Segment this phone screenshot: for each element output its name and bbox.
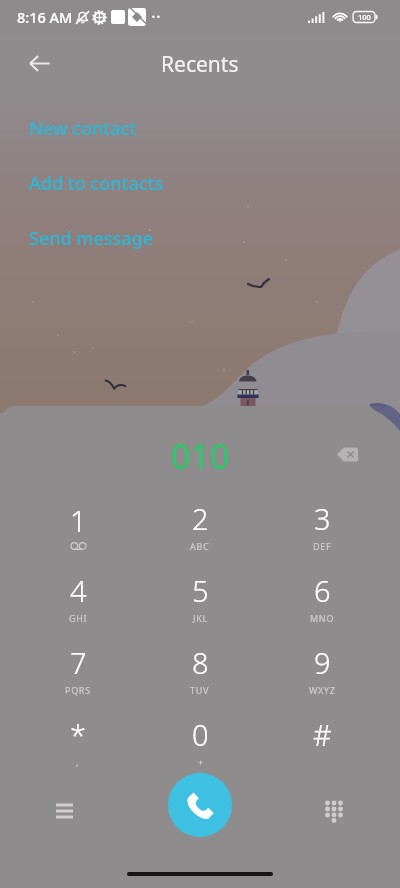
staticText: DEF xyxy=(313,540,332,552)
button[interactable]: 5 xyxy=(139,561,261,633)
staticText: 8:16 AM xyxy=(17,7,73,27)
staticText: GHI xyxy=(69,612,88,624)
staticText: # xyxy=(313,715,332,754)
staticText: 1 xyxy=(70,501,87,540)
button[interactable]: 0 xyxy=(139,705,261,777)
staticText: Add to contacts xyxy=(29,171,164,196)
staticText: WXYZ xyxy=(309,684,336,696)
button[interactable]: 3 xyxy=(261,489,383,561)
staticText: 8 xyxy=(192,643,209,682)
staticText: 010 xyxy=(171,433,230,479)
button[interactable]: 4 xyxy=(17,561,139,633)
button[interactable]: 6 xyxy=(261,561,383,633)
button[interactable]: Call xyxy=(168,773,232,837)
staticText: ABC xyxy=(190,540,210,552)
staticText: * xyxy=(70,715,86,754)
staticText: JKL xyxy=(193,612,208,624)
staticText: 6 xyxy=(314,571,331,610)
staticText: MNO xyxy=(310,612,335,624)
button[interactable]: Send message xyxy=(0,211,400,266)
staticText: 9 xyxy=(314,643,331,682)
staticText: 2 xyxy=(192,499,209,538)
staticText: Send message xyxy=(29,226,154,251)
button[interactable]: Backspace xyxy=(326,433,368,475)
staticText: 5 xyxy=(192,571,209,610)
staticText: + xyxy=(198,756,204,768)
button[interactable]: 2 xyxy=(139,489,261,561)
staticText: 3 xyxy=(314,499,331,538)
button[interactable]: * xyxy=(17,705,139,777)
staticText: New contact xyxy=(29,116,137,141)
button[interactable]: New contact xyxy=(0,101,400,156)
staticText: 4 xyxy=(70,571,87,610)
button[interactable]: Add to contacts xyxy=(0,156,400,211)
staticText: TUV xyxy=(190,684,210,696)
button[interactable]: 8 xyxy=(139,633,261,705)
button[interactable]: Back xyxy=(17,41,61,85)
staticText: 100 xyxy=(358,12,371,22)
button[interactable]: 9 xyxy=(261,633,383,705)
staticText: Recents xyxy=(161,50,239,79)
staticText: , xyxy=(76,756,80,768)
button[interactable]: Call log xyxy=(42,789,86,833)
staticText: 7 xyxy=(70,643,87,682)
staticText: 0 xyxy=(192,715,209,754)
button[interactable]: # xyxy=(261,705,383,777)
staticText: PQRS xyxy=(65,684,91,696)
button[interactable]: Dialpad xyxy=(312,789,356,833)
button[interactable]: 7 xyxy=(17,633,139,705)
button[interactable]: 1 xyxy=(17,489,139,561)
